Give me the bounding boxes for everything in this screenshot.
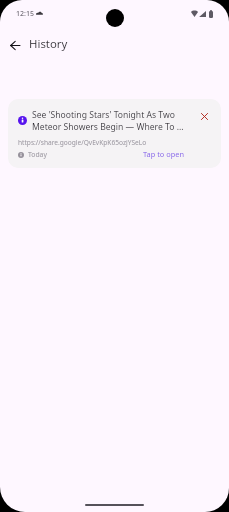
button[interactable]: See 'Shooting Stars' Tonight As Two Mete… [8, 99, 221, 168]
staticText: See 'Shooting Stars' Tonight As Two Mete… [32, 109, 184, 133]
staticText: https://share.google/QvEvKpK65ozjYSeLo [18, 138, 147, 147]
staticText: Tap to open [143, 149, 184, 159]
staticText: History [29, 36, 68, 52]
button[interactable]: Back [5, 35, 25, 55]
staticText: Today [28, 150, 47, 159]
button[interactable]: Tap to open [143, 149, 184, 159]
button[interactable]: Dismiss [196, 108, 212, 124]
staticText: 12:15 [16, 9, 34, 19]
